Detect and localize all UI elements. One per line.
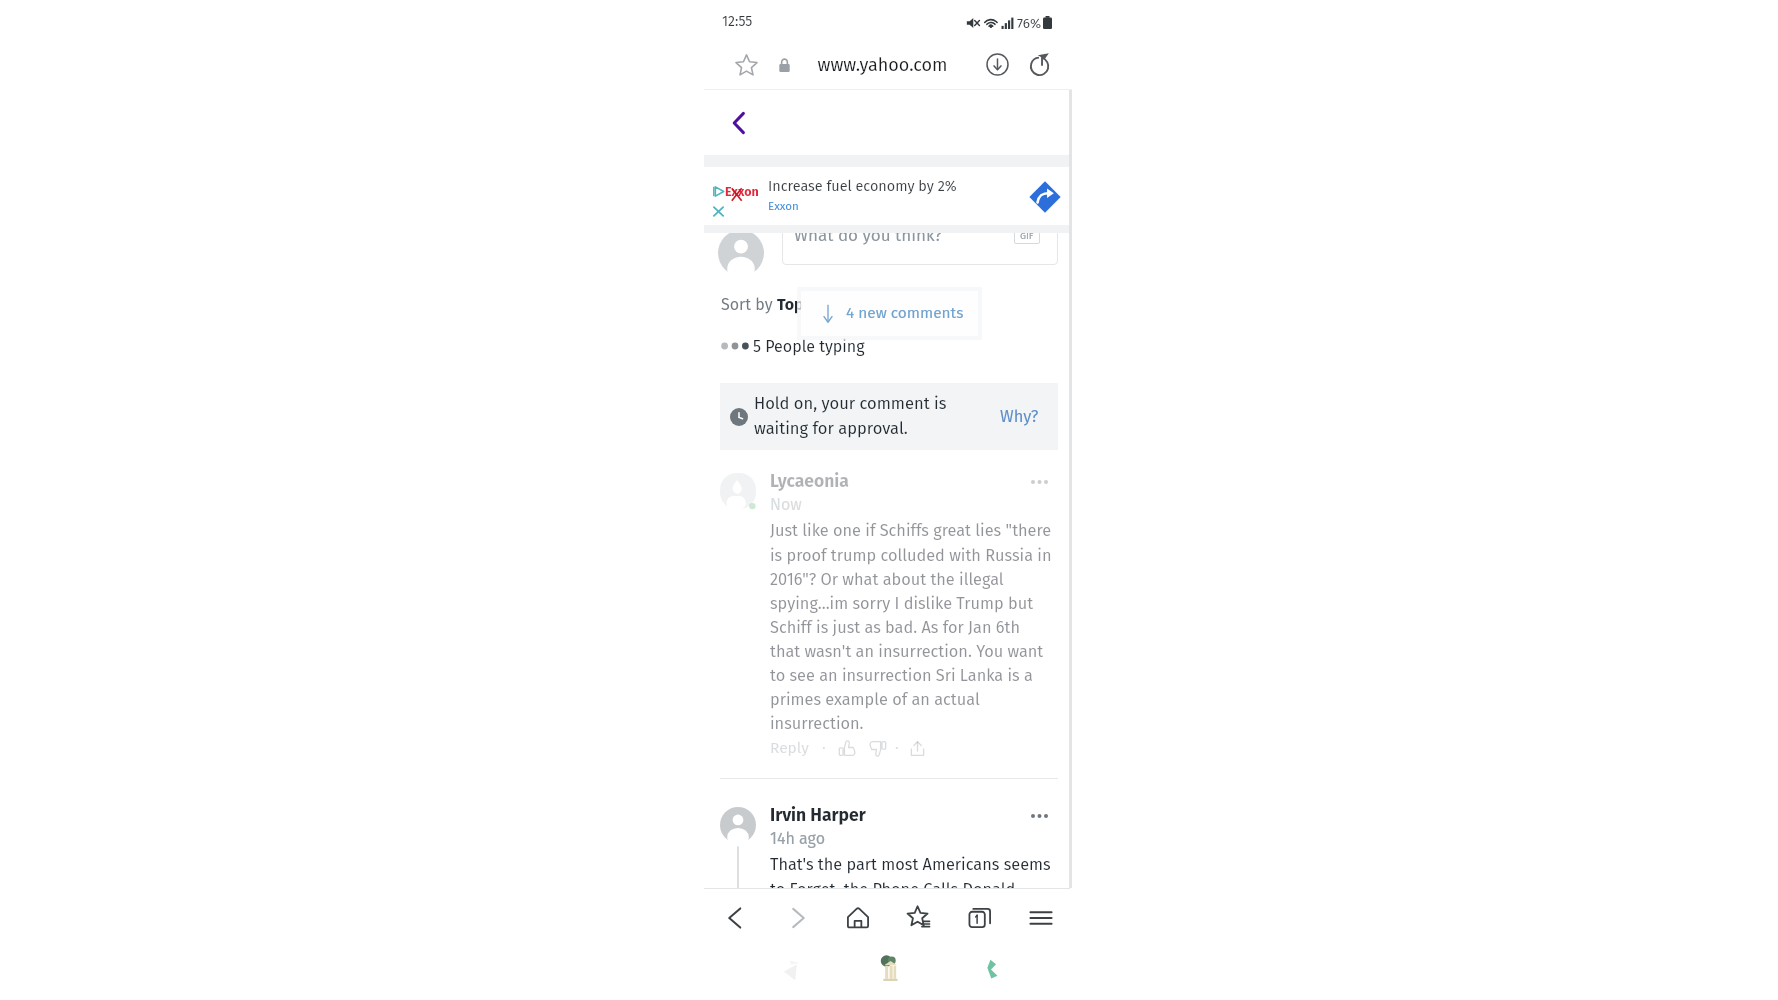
- button[interactable]: Recent apps: [976, 954, 1006, 984]
- button[interactable]: Menu: [1019, 896, 1063, 940]
- staticText: 4 new comments: [846, 304, 964, 322]
- button[interactable]: Downloads: [979, 46, 1015, 82]
- staticText: Top: [777, 295, 804, 314]
- button[interactable]: Ad choices: [707, 167, 1069, 225]
- staticText: 12:55: [722, 13, 753, 30]
- staticText: GIF: [1020, 230, 1034, 241]
- staticText: Hold on, your comment is waiting for app…: [754, 394, 947, 439]
- staticText: Exxon: [725, 184, 759, 199]
- staticText: 5 People typing: [753, 337, 865, 356]
- button[interactable]: Share: [907, 738, 927, 758]
- button[interactable]: Bookmarks: [897, 896, 941, 940]
- button[interactable]: Home: [836, 896, 880, 940]
- button[interactable]: Dislike: [867, 738, 887, 758]
- staticText: Sort by: [721, 295, 777, 314]
- button[interactable]: System home: [874, 952, 906, 984]
- button[interactable]: Comment options: [1026, 469, 1052, 495]
- staticText: Just like one if Schiffs great lies "the…: [770, 521, 1052, 733]
- button[interactable]: Bookmark page: [728, 47, 764, 83]
- button[interactable]: Ad choices: [711, 184, 726, 199]
- button[interactable]: Go back: [713, 896, 757, 940]
- staticText: Lycaeonia: [770, 471, 849, 492]
- button[interactable]: Like: [837, 738, 857, 758]
- button[interactable]: Hold on, your comment is waiting for app…: [720, 383, 1058, 450]
- button[interactable]: Reload page: [1022, 46, 1058, 82]
- button[interactable]: Back: [720, 104, 758, 142]
- staticText: ·: [822, 739, 826, 758]
- staticText: 76%: [1017, 15, 1042, 31]
- staticText: Increase fuel economy by 2%: [768, 178, 957, 195]
- staticText: 14h ago: [770, 829, 826, 848]
- staticText: Now: [770, 495, 802, 514]
- staticText: Irvin Harper: [770, 805, 866, 826]
- staticText: Exxon: [768, 199, 799, 213]
- button[interactable]: System back: [772, 954, 806, 988]
- button[interactable]: Tabs: [958, 896, 1002, 940]
- button[interactable]: Site security: [768, 49, 800, 81]
- staticText: Why?: [1000, 407, 1039, 427]
- staticText: What do you think?: [794, 225, 943, 245]
- staticText: www.yahoo.com: [817, 54, 948, 76]
- button[interactable]: Close ad: [711, 204, 726, 219]
- button[interactable]: 4 new comments: [801, 291, 978, 336]
- staticText: That's the part most Americans seems to …: [770, 855, 1051, 888]
- button[interactable]: Reply: [770, 739, 809, 758]
- button[interactable]: What do you think?: [782, 229, 1058, 265]
- staticText: ·: [895, 739, 899, 758]
- button[interactable]: Comment options: [1026, 803, 1052, 829]
- button[interactable]: Go forward: [776, 896, 820, 940]
- staticText: Reply: [770, 739, 809, 758]
